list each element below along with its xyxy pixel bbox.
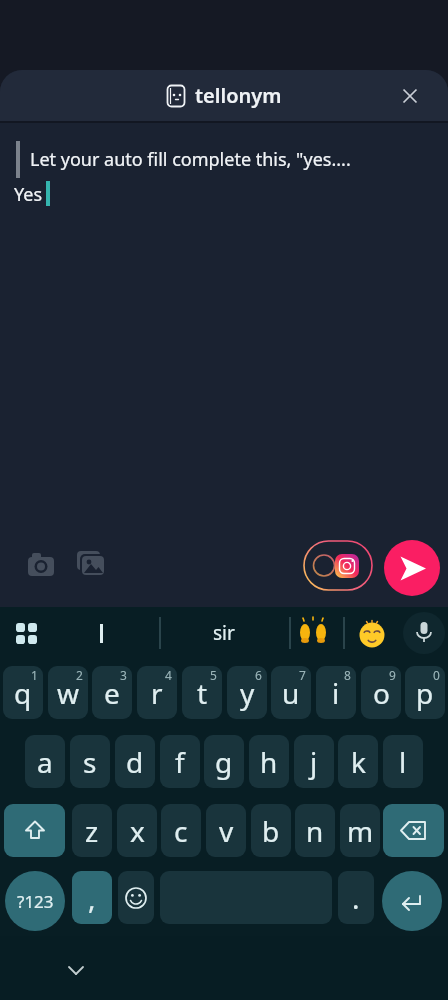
staticText: Yes	[14, 182, 43, 207]
button[interactable]	[4, 804, 65, 857]
staticText: z	[85, 812, 99, 850]
button[interactable]	[76, 550, 108, 580]
button[interactable]	[357, 618, 387, 648]
button[interactable]: ?123	[5, 871, 65, 931]
staticText: k	[351, 743, 366, 781]
button[interactable]: f	[160, 735, 200, 788]
button[interactable]: u	[271, 666, 311, 719]
button[interactable]: z	[72, 804, 112, 857]
staticText: ,	[88, 879, 96, 917]
staticText: 2	[76, 667, 83, 683]
button[interactable]	[396, 82, 424, 110]
staticText: q	[14, 674, 32, 712]
staticText: 5	[210, 667, 217, 683]
button[interactable]	[383, 804, 444, 857]
staticText: m	[347, 812, 374, 850]
staticText: o	[373, 674, 390, 712]
staticText: 8	[344, 667, 351, 683]
staticText: 0	[433, 667, 440, 683]
button[interactable]: sir	[160, 611, 288, 655]
staticText: .	[352, 879, 360, 917]
staticText: p	[416, 674, 434, 712]
staticText: r	[151, 674, 163, 712]
button[interactable]: e	[92, 666, 132, 719]
button[interactable]	[26, 550, 58, 580]
button[interactable]: m	[340, 804, 380, 857]
staticText: u	[282, 674, 300, 712]
button[interactable]: q	[3, 666, 43, 719]
staticText: 6	[255, 667, 262, 683]
button[interactable]: l	[383, 735, 423, 788]
staticText: n	[306, 812, 324, 850]
button[interactable]: x	[117, 804, 157, 857]
button[interactable]: w	[48, 666, 88, 719]
staticText: x	[130, 812, 145, 850]
button[interactable]: tellonym	[0, 70, 448, 121]
button[interactable]: o	[361, 666, 401, 719]
staticText: c	[174, 812, 188, 850]
button[interactable]: ,	[72, 871, 112, 924]
staticText: sir	[213, 620, 235, 646]
staticText: Let your auto fill complete this, "yes..…	[30, 147, 351, 172]
button[interactable]	[44, 611, 159, 655]
button[interactable]	[296, 616, 330, 650]
button[interactable]	[8, 615, 44, 651]
button[interactable]: i	[316, 666, 356, 719]
button[interactable]: .	[338, 871, 374, 924]
staticText: g	[215, 743, 233, 781]
staticText: 3	[120, 667, 127, 683]
button[interactable]: b	[251, 804, 291, 857]
button[interactable]	[303, 540, 373, 591]
button[interactable]	[62, 958, 90, 982]
staticText: a	[37, 743, 53, 781]
button[interactable]	[118, 871, 154, 924]
staticText: b	[262, 812, 280, 850]
button[interactable]: c	[161, 804, 201, 857]
staticText: d	[126, 743, 144, 781]
button[interactable]: v	[206, 804, 246, 857]
staticText: w	[57, 674, 80, 712]
staticText: 1	[31, 667, 38, 683]
button[interactable]	[384, 540, 440, 596]
staticText: h	[260, 743, 278, 781]
button[interactable]: n	[295, 804, 335, 857]
staticText: l	[399, 743, 407, 781]
button[interactable]: j	[294, 735, 334, 788]
button[interactable]	[382, 871, 442, 931]
button[interactable]: g	[204, 735, 244, 788]
button[interactable]: s	[70, 735, 110, 788]
staticText: v	[219, 812, 234, 850]
staticText: ?123	[17, 890, 54, 913]
staticText: f	[175, 743, 185, 781]
staticText: j	[310, 743, 318, 781]
staticText: tellonym	[195, 82, 282, 109]
staticText: i	[332, 674, 340, 712]
staticText: t	[197, 674, 208, 712]
staticText: 7	[299, 667, 306, 683]
staticText: 4	[165, 667, 172, 683]
button[interactable]: t	[182, 666, 222, 719]
button[interactable]: y	[227, 666, 267, 719]
button[interactable]	[403, 612, 445, 654]
button[interactable]: d	[115, 735, 155, 788]
button[interactable]: p	[405, 666, 445, 719]
staticText: s	[83, 743, 97, 781]
button[interactable]: h	[249, 735, 289, 788]
staticText: e	[104, 674, 120, 712]
button[interactable]: a	[25, 735, 65, 788]
button[interactable]: k	[338, 735, 378, 788]
button[interactable]: r	[137, 666, 177, 719]
staticText: 9	[389, 667, 396, 683]
staticText: y	[240, 674, 255, 712]
